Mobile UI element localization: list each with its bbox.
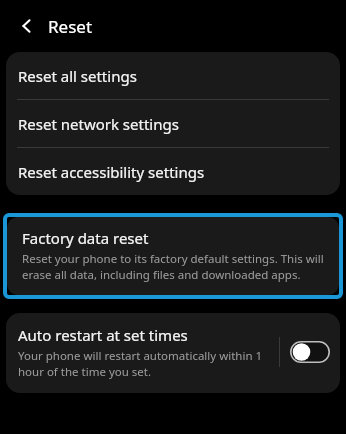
- staticText: Reset accessibility settings: [18, 162, 205, 182]
- button[interactable]: Factory data reset: [7, 217, 339, 295]
- staticText: Factory data reset: [22, 228, 149, 248]
- staticText: Reset: [48, 15, 93, 38]
- button[interactable]: Reset network settings: [6, 100, 340, 147]
- staticText: Reset all settings: [18, 66, 137, 86]
- staticText: Auto restart at set times: [18, 325, 188, 345]
- button[interactable]: Auto restart toggle: [290, 341, 330, 363]
- button[interactable]: Auto restart at set times: [6, 313, 340, 393]
- staticText: Reset your phone to its factory default …: [22, 251, 325, 282]
- staticText: Your phone will restart automatically wi…: [18, 348, 271, 379]
- button[interactable]: Back: [10, 9, 44, 43]
- button[interactable]: Reset accessibility settings: [6, 148, 340, 195]
- staticText: Reset network settings: [18, 114, 179, 134]
- button[interactable]: Reset all settings: [6, 52, 340, 99]
